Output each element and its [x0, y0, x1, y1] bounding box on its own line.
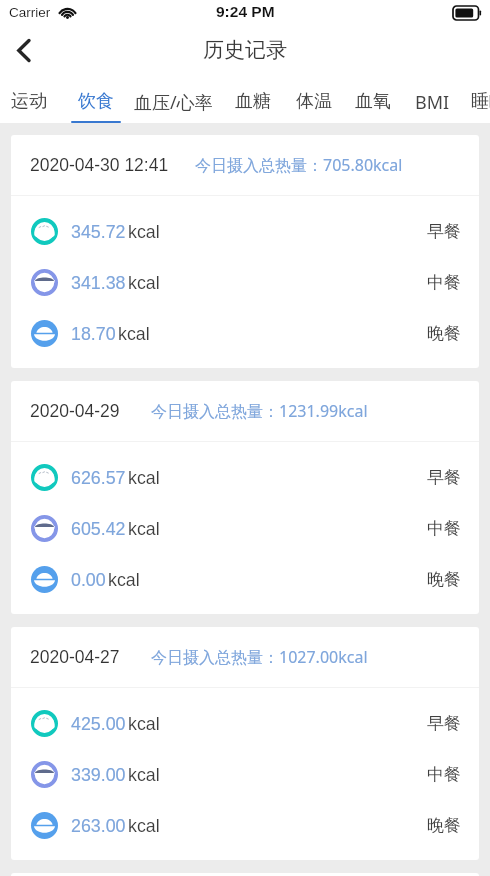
staticText: 血糖 — [235, 90, 271, 113]
staticText: kcal — [128, 222, 160, 242]
staticText: 今日摄入总热量：1231.99kcal — [151, 400, 368, 422]
staticText: 早餐 — [427, 221, 461, 242]
staticText: 341.38 — [71, 273, 126, 293]
staticText: kcal — [108, 570, 140, 590]
button[interactable]: 睡眠 — [471, 75, 490, 123]
button[interactable]: 0.00 — [31, 554, 461, 605]
button[interactable]: 18.70 — [31, 308, 461, 359]
button[interactable]: 2020-04-29 — [11, 381, 479, 614]
staticText: 2020-04-27 — [30, 647, 120, 667]
staticText: 晚餐 — [427, 569, 461, 590]
staticText: 血氧 — [355, 90, 391, 113]
staticText: kcal — [128, 273, 160, 293]
staticText: 运动 — [11, 90, 47, 113]
button[interactable]: Back — [0, 27, 46, 73]
staticText: 体温 — [296, 90, 332, 113]
staticText: 263.00 — [71, 816, 126, 836]
staticText: 早餐 — [427, 467, 461, 488]
button[interactable]: 345.72 — [31, 206, 461, 257]
staticText: 中餐 — [427, 518, 461, 539]
button[interactable]: 饮食 — [71, 75, 121, 123]
staticText: 626.57 — [71, 468, 126, 488]
staticText: BMI — [415, 90, 450, 115]
button[interactable]: 血糖 — [235, 75, 271, 123]
staticText: 9:24 PM — [216, 3, 275, 20]
staticText: 18.70 — [71, 324, 116, 344]
staticText: 2020-04-30 12:41 — [30, 155, 169, 175]
button[interactable]: 263.00 — [31, 800, 461, 851]
staticText: 中餐 — [427, 764, 461, 785]
staticText: kcal — [128, 468, 160, 488]
staticText: 早餐 — [427, 713, 461, 734]
staticText: kcal — [128, 714, 160, 734]
staticText: kcal — [128, 519, 160, 539]
staticText: 历史记录 — [203, 37, 287, 63]
staticText: 睡眠 — [471, 90, 490, 113]
button[interactable]: 运动 — [11, 75, 47, 123]
staticText: 425.00 — [71, 714, 126, 734]
button[interactable]: 339.00 — [31, 749, 461, 800]
staticText: 晚餐 — [427, 815, 461, 836]
button[interactable]: 626.57 — [31, 452, 461, 503]
staticText: 血压/心率 — [134, 90, 213, 115]
staticText: 今日摄入总热量：1027.00kcal — [151, 646, 368, 668]
staticText: 2020-04-29 — [30, 401, 120, 421]
button[interactable]: 血压/心率 — [134, 75, 213, 123]
button[interactable]: 血氧 — [355, 75, 391, 123]
button[interactable]: 2020-04-30 12:41 — [11, 135, 479, 368]
staticText: 339.00 — [71, 765, 126, 785]
staticText: 345.72 — [71, 222, 126, 242]
staticText: kcal — [118, 324, 150, 344]
button[interactable]: 体温 — [296, 75, 332, 123]
button[interactable]: 341.38 — [31, 257, 461, 308]
staticText: 晚餐 — [427, 323, 461, 344]
staticText: 今日摄入总热量：705.80kcal — [195, 154, 403, 176]
staticText: kcal — [128, 765, 160, 785]
staticText: 0.00 — [71, 570, 106, 590]
staticText: Carrier — [9, 5, 51, 20]
button[interactable]: 425.00 — [31, 698, 461, 749]
staticText: 605.42 — [71, 519, 126, 539]
staticText: kcal — [128, 816, 160, 836]
button[interactable]: BMI — [415, 75, 450, 123]
staticText: 中餐 — [427, 272, 461, 293]
button[interactable]: 2020-04-27 — [11, 627, 479, 860]
staticText: 饮食 — [78, 90, 114, 113]
button[interactable]: 605.42 — [31, 503, 461, 554]
